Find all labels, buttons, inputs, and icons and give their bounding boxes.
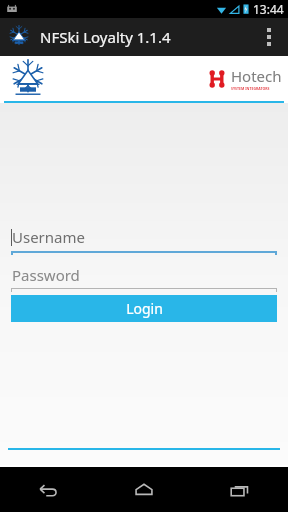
- staticText: Username: [12, 227, 85, 247]
- staticText: SYSTEM INTEGRATORS: [231, 86, 270, 91]
- staticText: 13:44: [253, 1, 284, 17]
- button[interactable]: Password: [11, 262, 277, 288]
- staticText: Password: [12, 265, 80, 285]
- staticText: NFSki Loyalty 1.1.4: [40, 27, 171, 47]
- button[interactable]: Home: [96, 467, 192, 512]
- button[interactable]: Back: [0, 467, 96, 512]
- button[interactable]: More options: [250, 18, 288, 56]
- staticText: Login: [126, 299, 163, 318]
- button[interactable]: Username: [11, 223, 277, 251]
- button[interactable]: Login: [11, 295, 277, 322]
- button[interactable]: Recent apps: [192, 467, 288, 512]
- staticText: Hotech: [231, 66, 282, 86]
